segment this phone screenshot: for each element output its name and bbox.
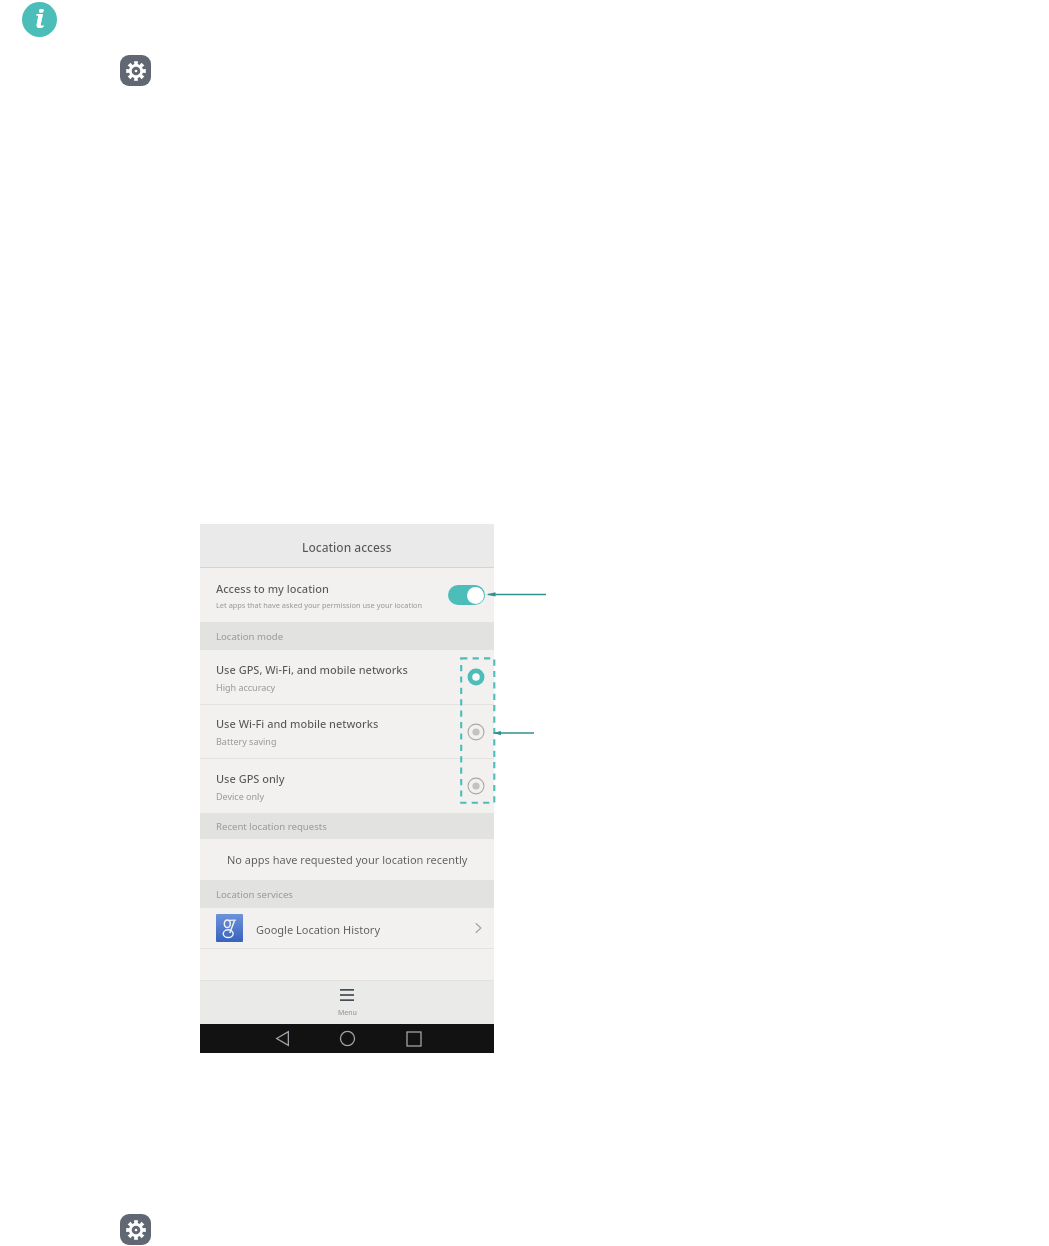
staticText: No apps have requested your location rec… [227, 852, 468, 867]
staticText: Location access [302, 539, 392, 555]
button[interactable]: Settings [120, 55, 151, 86]
staticText: i [35, 2, 45, 35]
button[interactable]: Use Wi-Fi and mobile networks [200, 705, 494, 758]
staticText: Location mode [216, 630, 284, 643]
button[interactable]: Info [22, 2, 57, 37]
button[interactable]: Back [268, 1024, 297, 1053]
button[interactable]: Home [333, 1024, 362, 1053]
button[interactable]: Settings [120, 1214, 151, 1245]
button[interactable]: Menu [336, 985, 358, 1005]
staticText: Menu [338, 1008, 357, 1018]
button[interactable]: Access to my location [200, 568, 494, 622]
staticText: Google Location History [256, 922, 381, 937]
button[interactable]: Google Location History [200, 908, 494, 948]
staticText: Use GPS only [216, 771, 285, 786]
staticText: Use Wi-Fi and mobile networks [216, 716, 379, 731]
staticText: Access to my location [216, 581, 329, 596]
staticText: Location services [216, 888, 293, 901]
button[interactable]: Recents [399, 1024, 428, 1053]
staticText: Battery saving [216, 735, 277, 747]
button[interactable]: Use GPS, Wi-Fi, and mobile networks [200, 650, 494, 704]
button[interactable]: No apps have requested your location rec… [200, 839, 494, 880]
staticText: Let apps that have asked your permission… [216, 600, 444, 610]
staticText: Recent location requests [216, 820, 327, 833]
staticText: Device only [216, 790, 265, 802]
staticText: Use GPS, Wi-Fi, and mobile networks [216, 662, 408, 677]
staticText: High accuracy [216, 681, 276, 693]
button[interactable]: Use GPS only [200, 759, 494, 813]
button[interactable]: Toggle location [448, 585, 485, 605]
